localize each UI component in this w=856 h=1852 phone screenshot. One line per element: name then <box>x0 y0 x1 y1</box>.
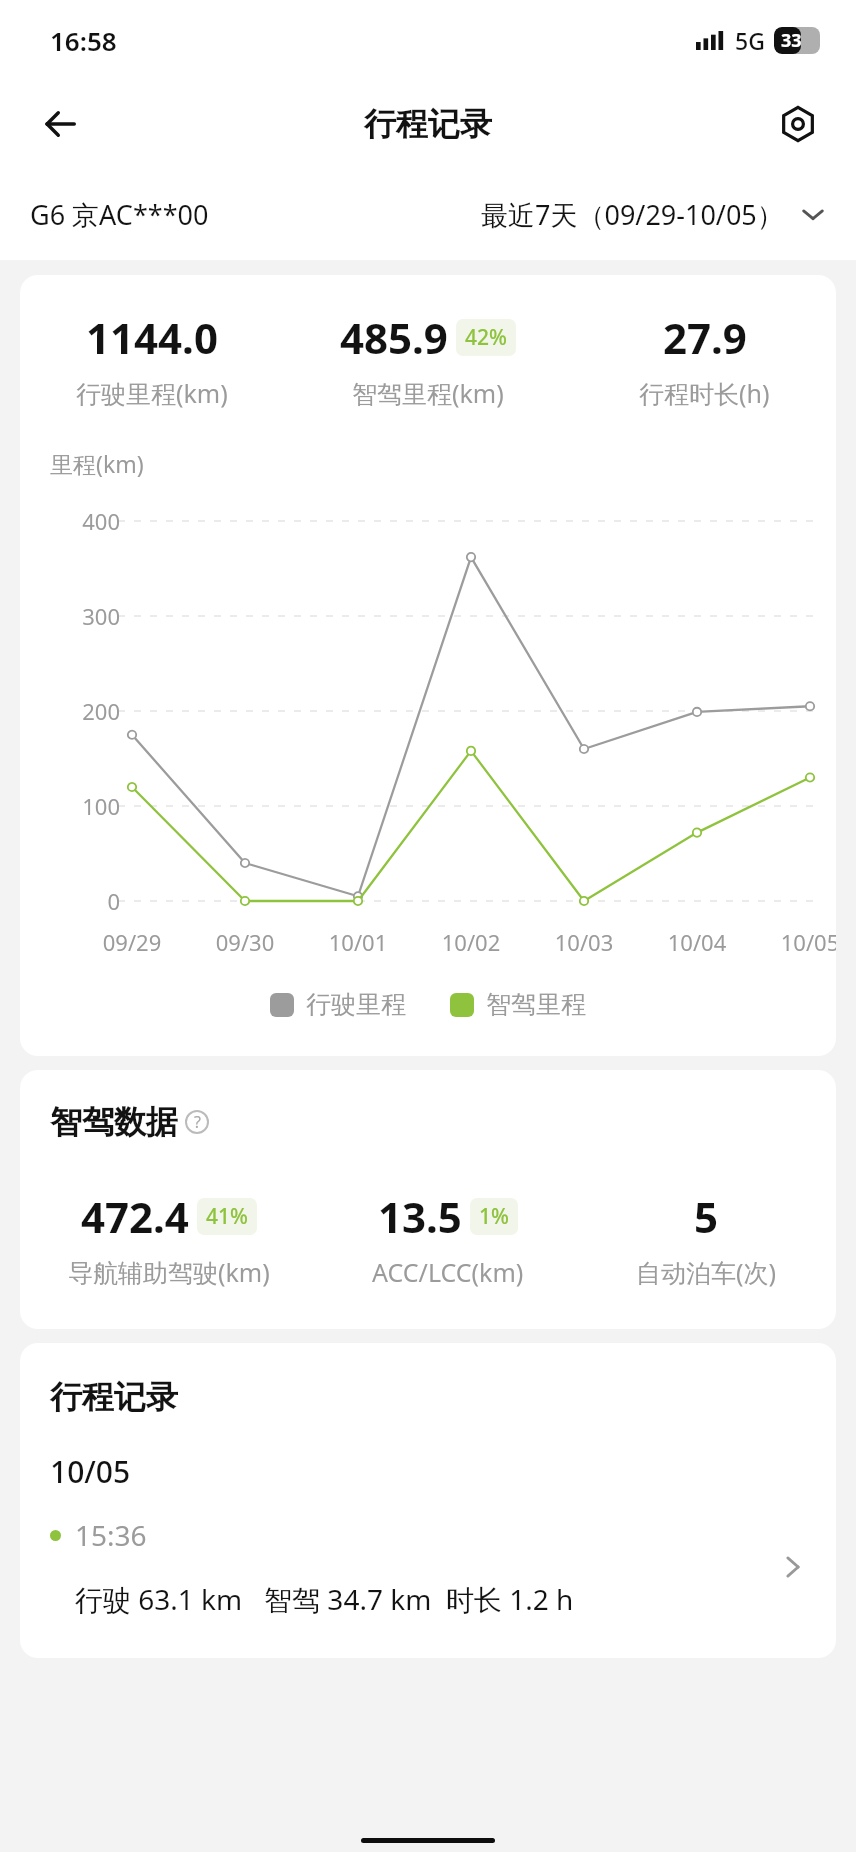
staticText: 27.9 <box>663 309 747 366</box>
staticText: 10/05 <box>50 1451 131 1492</box>
staticText: 行程记录 <box>364 104 492 144</box>
staticText: 09/29 <box>87 927 177 957</box>
staticText: 行驶 63.1 km 智驾 34.7 km 时长 1.2 h <box>75 1580 574 1618</box>
button[interactable]: Back <box>30 94 90 154</box>
staticText: 自动泊车(次) <box>636 1255 777 1289</box>
staticText: 1144.0 <box>86 309 218 366</box>
staticText: 10/04 <box>652 927 742 957</box>
button[interactable]: Settings <box>768 94 828 154</box>
staticText: 13.5 <box>378 1188 462 1245</box>
staticText: 智驾里程 <box>486 989 586 1020</box>
staticText: 最近7天（09/29-10/05） <box>481 196 784 233</box>
button[interactable]: 15:36 <box>20 1516 836 1618</box>
staticText: 0 <box>34 886 120 916</box>
staticText: 10/02 <box>426 927 516 957</box>
staticText: 行驶里程(km) <box>76 376 228 410</box>
staticText: 42% <box>465 323 507 352</box>
button[interactable]: Help <box>184 1109 210 1135</box>
staticText: 行程时长(h) <box>639 376 770 410</box>
staticText: 15:36 <box>75 1516 147 1554</box>
staticText: 400 <box>34 506 120 536</box>
staticText: ACC/LCC(km) <box>372 1255 524 1289</box>
staticText: 智驾数据 <box>50 1102 178 1142</box>
staticText: 33 <box>781 28 802 53</box>
staticText: 16:58 <box>50 23 117 58</box>
staticText: 200 <box>34 696 120 726</box>
staticText: 1% <box>479 1202 509 1231</box>
staticText: 导航辅助驾驶(km) <box>68 1255 270 1289</box>
staticText: G6 京AC***00 <box>30 196 209 233</box>
staticText: 5 <box>694 1188 719 1245</box>
staticText: ? <box>194 1111 201 1133</box>
staticText: 10/03 <box>539 927 629 957</box>
staticText: 485.9 <box>340 309 448 366</box>
staticText: 41% <box>206 1202 248 1231</box>
staticText: 里程(km) <box>50 448 144 479</box>
staticText: 10/05 <box>765 927 836 957</box>
staticText: 300 <box>34 601 120 631</box>
staticText: 智驾里程(km) <box>352 376 504 410</box>
staticText: 100 <box>34 791 120 821</box>
staticText: 472.4 <box>81 1188 189 1245</box>
staticText: 09/30 <box>200 927 290 957</box>
staticText: 行程记录 <box>50 1377 178 1417</box>
staticText: 行驶里程 <box>306 989 406 1020</box>
staticText: 5G <box>735 25 765 56</box>
staticText: 10/01 <box>313 927 403 957</box>
button[interactable]: G6 京AC***00 <box>0 168 856 260</box>
